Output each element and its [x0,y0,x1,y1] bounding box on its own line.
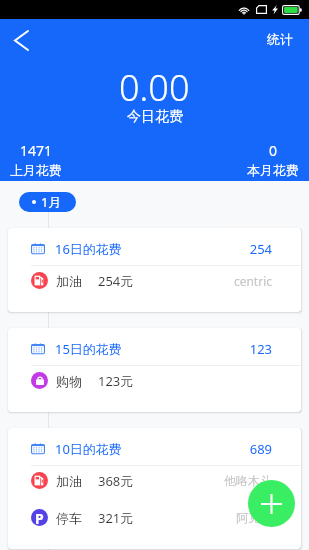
staticText: 上月花费 [10,162,62,178]
staticText: 他咯木斗 [134,473,272,488]
staticText: 689 [122,440,272,458]
staticText: 254 [122,240,272,258]
button[interactable]: Back [7,26,36,55]
staticText: 加油 [56,473,82,489]
staticText: 加油 [56,273,82,289]
staticText: P [35,509,44,526]
staticText: 10日的花费 [55,440,122,458]
button[interactable]: Add expense [248,480,295,527]
staticText: 购物 [56,373,82,389]
staticText: 368元 [98,472,134,490]
staticText: 阿克苏 [134,510,272,525]
button[interactable]: 16日的花费 [8,228,301,312]
button[interactable]: 15日的花费 [8,328,301,412]
staticText: 123 [122,340,272,358]
staticText: 停车 [56,510,82,526]
staticText: 1月 [41,193,62,211]
staticText: 统计 [267,31,293,47]
staticText: 321元 [98,509,134,527]
button[interactable]: 10日的花费 [8,428,301,549]
staticText: 15日的花费 [55,340,122,358]
staticText: 1471 [20,141,53,160]
staticText: 0.00 [119,63,190,112]
staticText: 0 [269,141,278,160]
staticText: 本月花费 [247,162,299,178]
staticText: 今日花费 [127,108,183,126]
staticText: centric [134,273,272,289]
staticText: 16日的花费 [55,240,122,258]
button[interactable]: 1月 [19,192,76,212]
button[interactable]: 统计 [267,31,293,47]
staticText: 123元 [98,372,134,390]
staticText: 254元 [98,272,134,290]
